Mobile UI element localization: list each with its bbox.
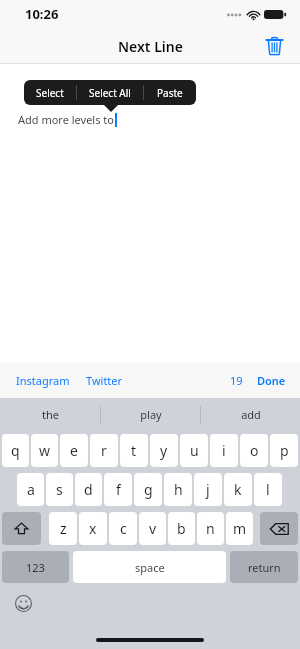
button[interactable]: h [164,473,192,506]
button[interactable]: k [224,473,252,506]
staticText: k [234,480,242,499]
button[interactable]: x [79,512,107,545]
staticText: Add more levels to [18,112,114,127]
button[interactable]: j [194,473,222,506]
button[interactable]: Select [24,80,76,105]
button[interactable]: t [120,434,148,467]
button[interactable]: o [240,434,268,467]
staticText: Done [257,373,286,388]
button[interactable]: return [230,551,298,583]
staticText: t [131,441,137,460]
staticText: c [120,519,127,538]
staticText: add [241,407,261,422]
button[interactable]: c [109,512,137,545]
staticText: a [27,480,35,499]
staticText: return [248,560,281,575]
button[interactable]: Paste [144,80,196,105]
button[interactable]: f [104,473,132,506]
staticText: the [42,407,59,422]
button[interactable]: play [101,398,200,431]
button[interactable]: Backspace [260,512,298,545]
button[interactable]: v [139,512,166,545]
button[interactable]: a [17,473,44,506]
staticText: Twitter [86,373,123,388]
button[interactable]: b [168,512,195,545]
staticText: space [135,560,165,575]
staticText: Paste [157,86,183,100]
staticText: d [84,480,93,499]
button[interactable]: n [197,512,224,545]
button[interactable]: p [270,434,298,467]
staticText: Select [36,86,64,100]
button[interactable]: l [254,473,282,506]
staticText: x [89,519,97,538]
staticText: s [56,480,63,499]
staticText: p [280,441,289,460]
staticText: 10:26 [25,5,59,23]
button[interactable]: the [0,398,100,431]
staticText: r [101,441,107,460]
button[interactable]: i [210,434,238,467]
button[interactable]: w [31,434,58,467]
button[interactable]: r [90,434,118,467]
button[interactable]: Shift [2,512,41,545]
button[interactable]: d [75,473,102,506]
staticText: j [206,480,210,499]
staticText: b [177,519,186,538]
button[interactable]: space [73,551,226,583]
staticText: z [60,519,67,538]
staticText: g [144,480,153,499]
button[interactable]: Done [255,369,288,392]
staticText: 123 [26,560,45,575]
button[interactable]: m [226,512,253,545]
staticText: o [250,441,259,460]
staticText: i [222,441,226,460]
staticText: u [190,441,199,460]
button[interactable]: Delete [258,30,290,62]
button[interactable]: q [2,434,29,467]
staticText: Select All [89,86,131,100]
staticText: v [149,519,157,538]
staticText: f [116,480,121,499]
staticText: w [39,441,51,460]
staticText: 19 [230,373,243,388]
button[interactable]: Select All [77,80,143,105]
staticText: Instagram [16,373,70,388]
button[interactable]: g [134,473,162,506]
staticText: q [11,441,20,460]
staticText: e [70,441,78,460]
staticText: l [266,480,270,499]
button[interactable]: s [46,473,73,506]
button[interactable]: u [180,434,208,467]
button[interactable]: add [201,398,300,431]
button[interactable]: z [49,512,77,545]
button[interactable]: e [60,434,88,467]
button[interactable]: 123 [2,551,69,583]
staticText: Next Line [118,37,183,56]
button[interactable]: Twitter [84,369,125,392]
button[interactable]: Emoji [12,592,34,614]
staticText: m [233,519,247,538]
button[interactable]: y [150,434,178,467]
button[interactable]: Instagram [14,369,72,392]
staticText: y [160,441,168,460]
staticText: play [140,407,162,422]
staticText: n [206,519,215,538]
staticText: h [174,480,183,499]
